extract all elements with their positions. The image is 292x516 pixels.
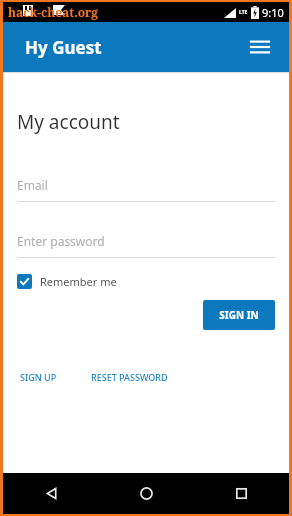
button[interactable]: Home bbox=[99, 473, 194, 514]
staticText: 9:10 bbox=[262, 5, 284, 20]
button[interactable]: SIGN IN bbox=[203, 300, 275, 330]
button[interactable]: Back bbox=[3, 473, 99, 514]
staticText: LTE bbox=[239, 9, 248, 16]
staticText: RESET PASSWORD bbox=[91, 371, 168, 383]
staticText: Enter password bbox=[17, 233, 105, 249]
button[interactable]: Remember me bbox=[17, 272, 117, 291]
staticText: Email bbox=[17, 177, 48, 193]
staticText: hack-cheat.org bbox=[8, 4, 99, 20]
staticText: SIGN UP bbox=[20, 371, 57, 383]
staticText: SIGN IN bbox=[219, 308, 259, 322]
button[interactable]: Email bbox=[17, 177, 275, 202]
button[interactable]: Recent apps bbox=[194, 473, 289, 514]
button[interactable]: SIGN UP bbox=[17, 368, 60, 386]
staticText: My account bbox=[17, 109, 120, 135]
button[interactable]: Enter password bbox=[17, 233, 275, 258]
button[interactable]: Open navigation menu bbox=[243, 30, 277, 64]
staticText: Remember me bbox=[40, 274, 117, 289]
button[interactable]: RESET PASSWORD bbox=[88, 368, 171, 386]
staticText: Hy Guest bbox=[25, 36, 102, 59]
